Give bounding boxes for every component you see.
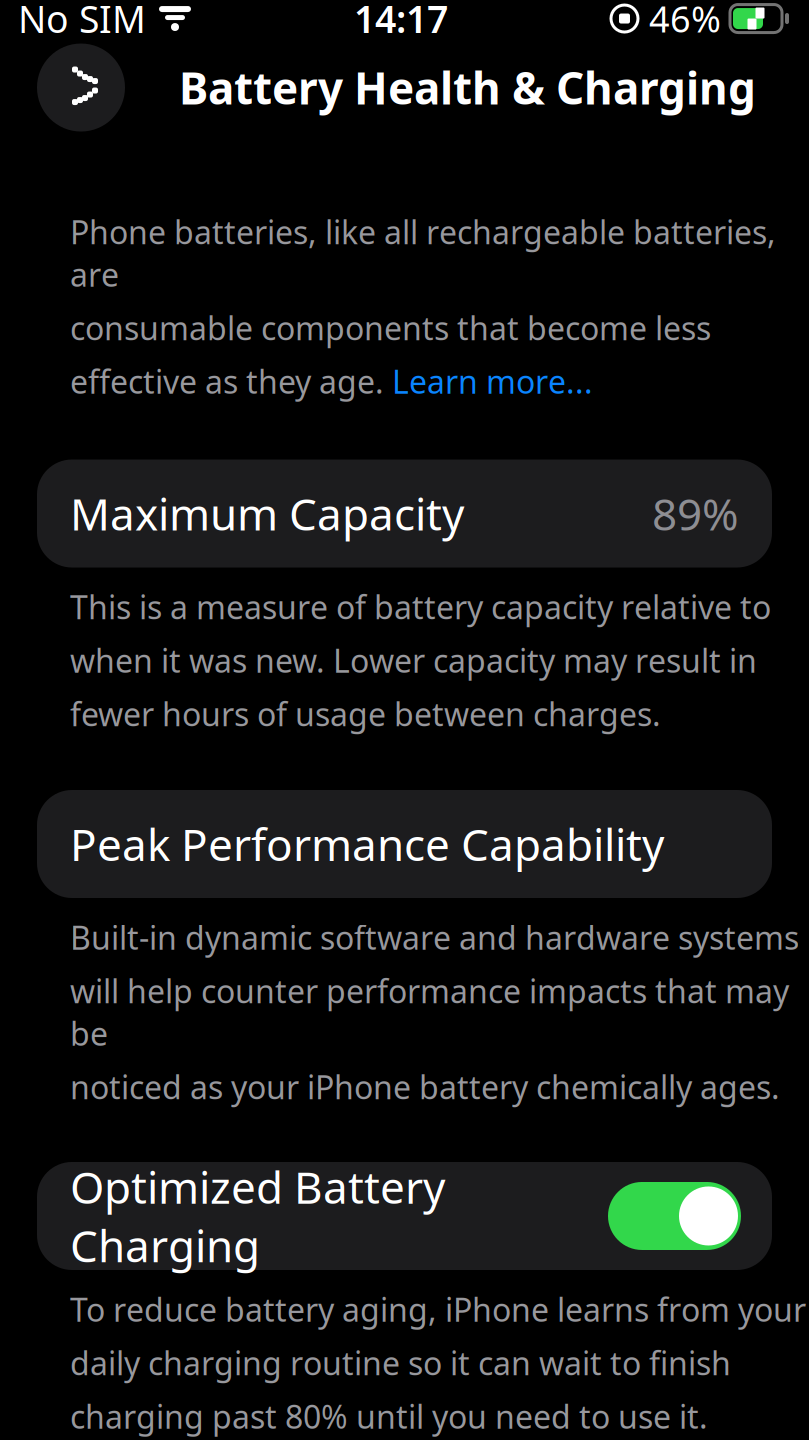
staticText: Peak Performance Capability (70, 815, 664, 873)
staticText: 46% (649, 0, 721, 42)
staticText: To reduce battery aging, iPhone learns f… (70, 1288, 806, 1330)
staticText: noticed as your iPhone battery chemicall… (70, 1065, 780, 1108)
staticText: charging past 80% until you need to use … (70, 1395, 708, 1437)
staticText: fewer hours of usage between charges. (70, 692, 661, 735)
staticText: Learn more... (392, 360, 593, 402)
staticText: This is a measure of battery capacity re… (70, 585, 771, 628)
staticText: when it was new. Lower capacity may resu… (70, 639, 757, 681)
staticText: will help counter performance impacts th… (70, 969, 789, 1054)
staticText: 14:17 (354, 0, 448, 43)
staticText: effective as they age. (70, 360, 392, 402)
staticText: daily charging routine so it can wait to… (70, 1341, 731, 1384)
button[interactable]: Back (37, 43, 125, 131)
staticText: Maximum Capacity (70, 484, 464, 543)
staticText: Phone batteries, like all rechargeable b… (70, 210, 776, 295)
staticText: Battery Health & Charging (179, 58, 756, 117)
button[interactable]: Learn more... (392, 360, 593, 402)
staticText: Built-in dynamic software and hardware s… (70, 916, 799, 958)
button[interactable]: Optimized Battery Charging (608, 1182, 741, 1250)
staticText: No SIM (18, 0, 146, 43)
staticText: Optimized Battery Charging (70, 1158, 445, 1274)
staticText: consumable components that become less (70, 306, 711, 349)
staticText: 89% (652, 484, 739, 543)
